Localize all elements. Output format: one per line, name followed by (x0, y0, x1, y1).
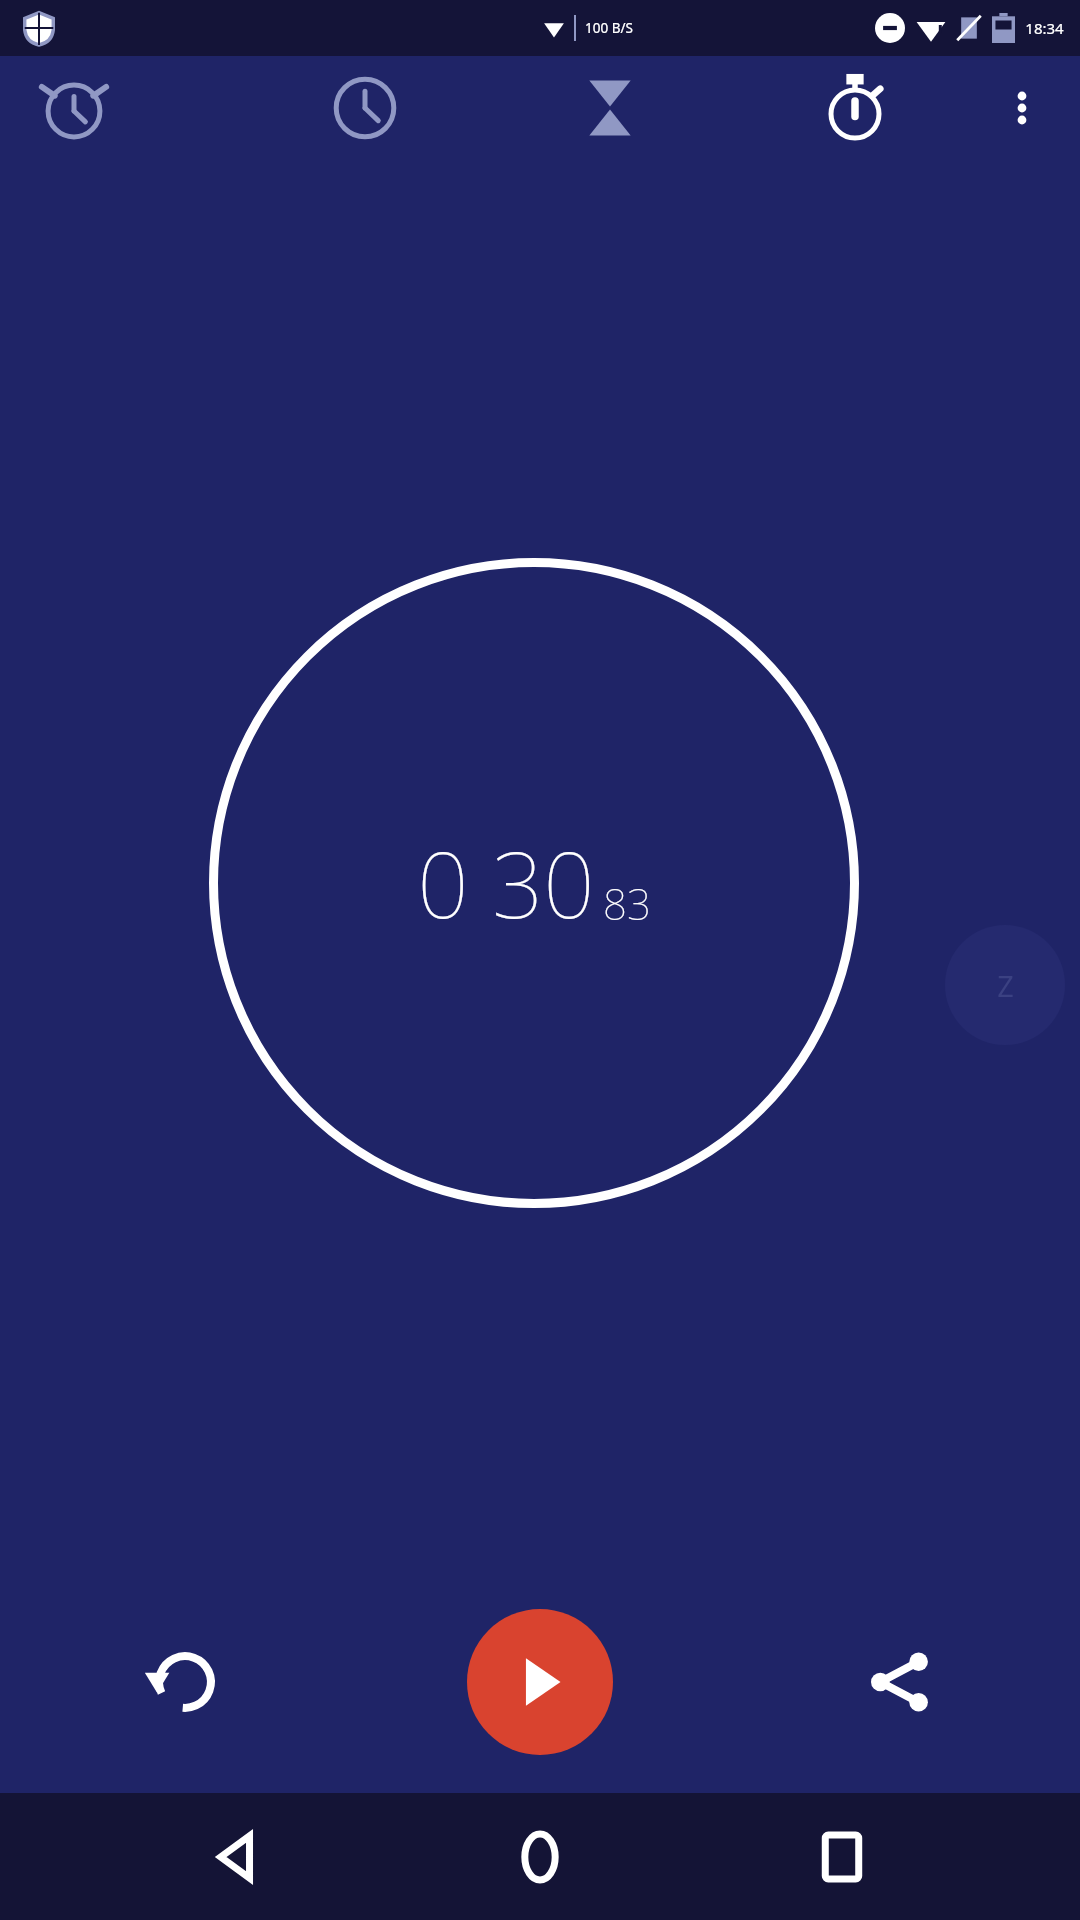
button[interactable]: Start (467, 1609, 613, 1755)
button[interactable]: Clock (317, 60, 413, 156)
button[interactable]: Reset (122, 1622, 242, 1742)
staticText: 100 B/S (585, 19, 633, 37)
button[interactable]: Back (178, 1797, 298, 1917)
button[interactable]: Timer (562, 60, 658, 156)
staticText: 83 (603, 875, 651, 932)
button[interactable]: Home (480, 1797, 600, 1917)
button[interactable]: Keep screen on (945, 925, 1065, 1045)
staticText: 0 30 (417, 822, 595, 945)
button[interactable]: Recents (782, 1797, 902, 1917)
staticText: Z (997, 966, 1014, 1005)
button[interactable]: Alarm (26, 60, 122, 156)
staticText: 18:34 (1025, 18, 1064, 38)
button[interactable]: Share (840, 1622, 960, 1742)
button[interactable]: More options (974, 60, 1070, 156)
button[interactable]: Stopwatch (807, 60, 903, 156)
